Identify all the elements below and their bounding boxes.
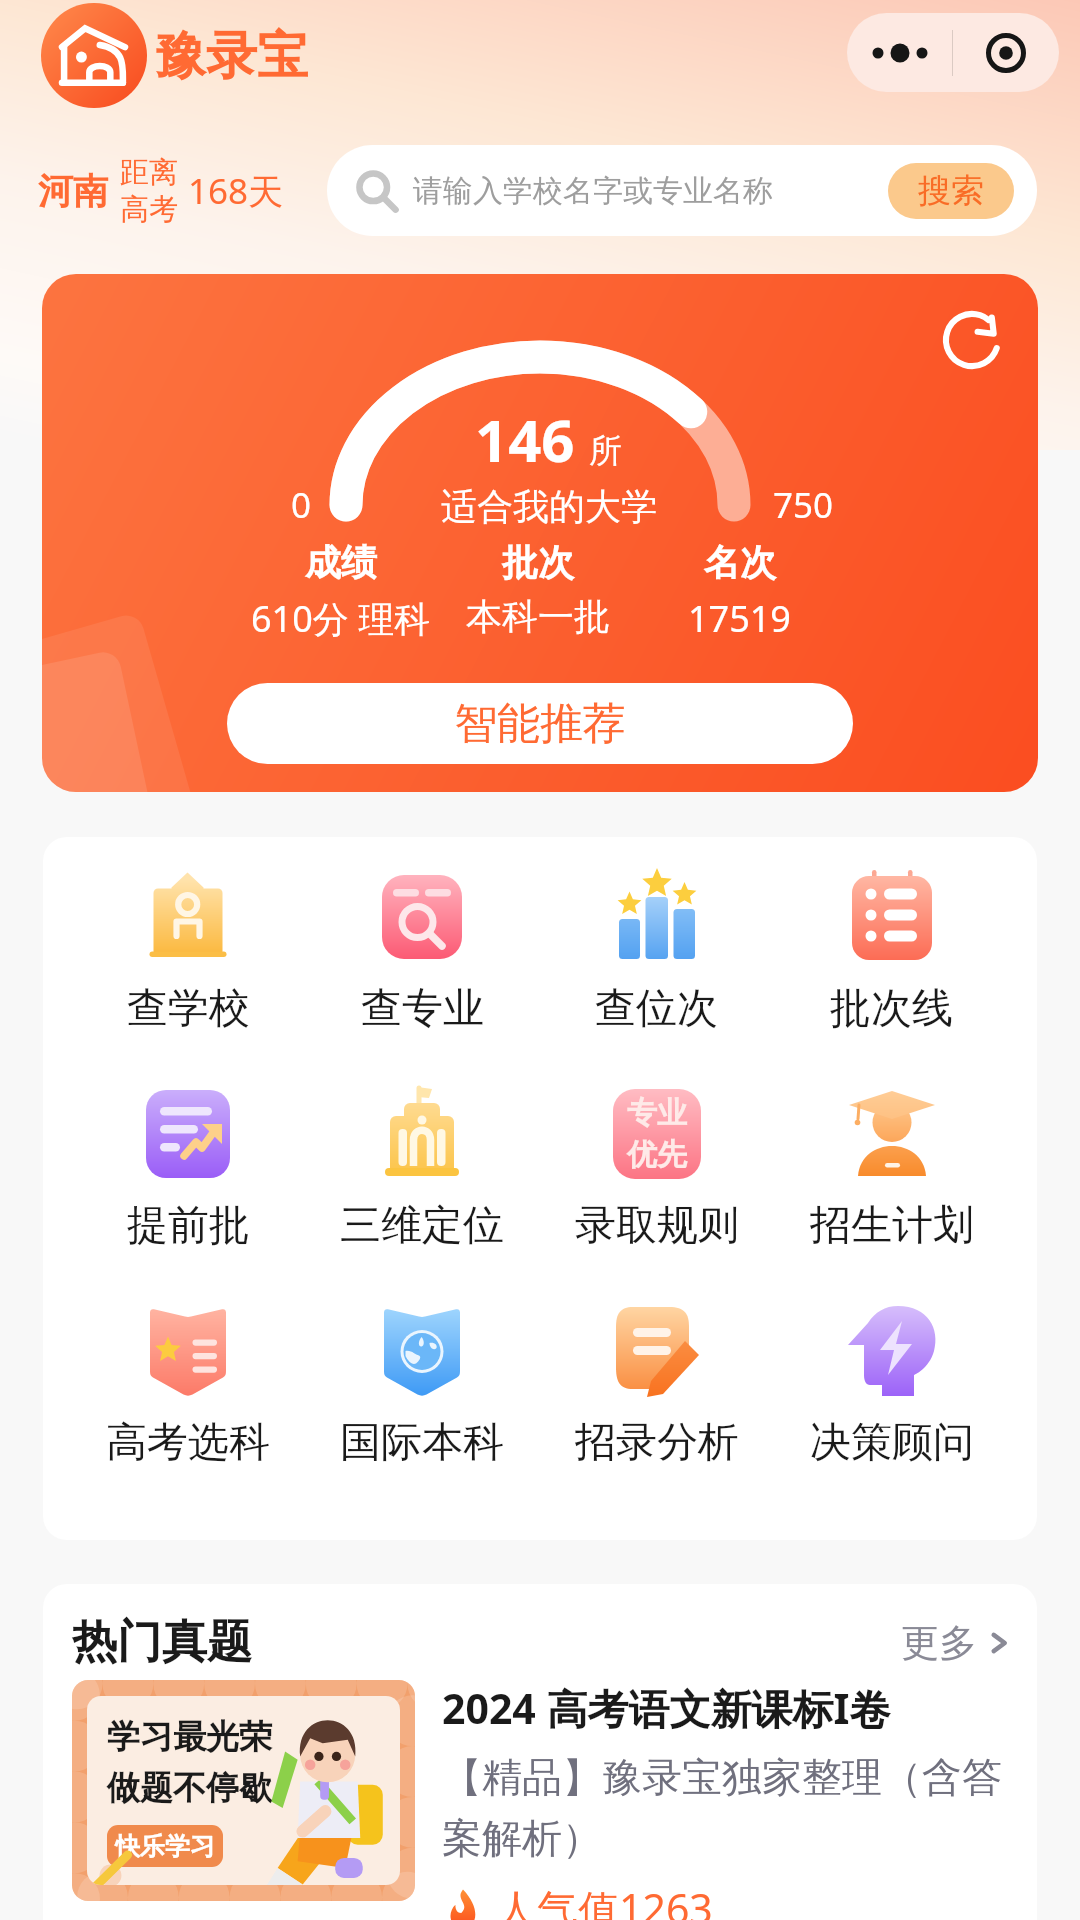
button[interactable]: Close <box>953 13 1059 92</box>
staticText: 名次 <box>704 540 776 585</box>
staticText: 专业 <box>627 1094 687 1132</box>
button[interactable]: More <box>847 13 952 92</box>
staticText: 本科一批 <box>466 594 610 639</box>
staticText: 610分 理科 <box>251 594 431 643</box>
staticText: 招录分析 <box>575 1417 739 1469</box>
button[interactable]: 查专业 <box>305 867 539 1035</box>
staticText: 提前批 <box>127 1200 250 1252</box>
button[interactable]: Refresh <box>941 309 1003 371</box>
staticText: 热门真题 <box>72 1614 252 1671</box>
staticText: 豫录宝 <box>155 24 308 88</box>
staticText: 高考 <box>120 191 178 228</box>
button[interactable]: 智能推荐 <box>227 683 853 764</box>
staticText: 批次线 <box>830 983 953 1035</box>
staticText: 适合我的大学 <box>441 484 657 529</box>
button[interactable]: 批次线 <box>774 867 1009 1035</box>
staticText: 决策顾问 <box>810 1417 974 1469</box>
staticText: 批次 <box>502 540 574 585</box>
staticText: 0 <box>291 481 312 529</box>
button[interactable]: 专业 <box>539 1084 774 1252</box>
staticText: 更多 <box>901 1619 977 1667</box>
staticText: 查专业 <box>361 983 484 1035</box>
button[interactable]: 三维定位 <box>305 1084 539 1252</box>
staticText: 请输入学校名字或专业名称 <box>413 172 773 210</box>
staticText: 高考选科 <box>106 1417 270 1469</box>
button[interactable]: 查位次 <box>539 867 774 1035</box>
staticText: 146 <box>475 400 575 479</box>
staticText: 优先 <box>627 1136 687 1174</box>
staticText: 三维定位 <box>340 1200 504 1252</box>
staticText: 做题不停歇 <box>107 1767 272 1809</box>
staticText: 距离 <box>120 154 178 191</box>
button[interactable]: 决策顾问 <box>774 1301 1009 1469</box>
button[interactable]: 请输入学校名字或专业名称 <box>327 145 1037 236</box>
button[interactable]: 学习最光荣 <box>72 1680 1017 1920</box>
staticText: 招生计划 <box>810 1200 974 1252</box>
staticText: 快乐学习 <box>115 1831 215 1862</box>
button[interactable]: 国际本科 <box>305 1301 539 1469</box>
staticText: 查位次 <box>595 983 718 1035</box>
staticText: 国际本科 <box>340 1417 504 1469</box>
staticText: 【精品】豫录宝独家整理（含答案解析） <box>442 1752 1017 1864</box>
button[interactable]: 高考选科 <box>71 1301 305 1469</box>
staticText: 168天 <box>188 167 284 215</box>
staticText: 17519 <box>688 594 791 643</box>
staticText: 河南 <box>38 169 108 213</box>
button[interactable]: 招录分析 <box>539 1301 774 1469</box>
staticText: 成绩 <box>305 540 377 585</box>
button[interactable]: 招生计划 <box>774 1084 1009 1252</box>
staticText: 人气值1263 <box>496 1880 713 1920</box>
staticText: 750 <box>773 481 834 529</box>
staticText: 录取规则 <box>575 1200 739 1252</box>
button[interactable]: 查学校 <box>71 867 305 1035</box>
staticText: 智能推荐 <box>454 697 626 751</box>
button[interactable]: 更多 <box>901 1619 1011 1667</box>
staticText: 搜索 <box>918 170 984 212</box>
button[interactable]: 搜索 <box>888 163 1014 219</box>
staticText: 查学校 <box>127 983 250 1035</box>
staticText: 所 <box>589 430 622 472</box>
staticText: 2024 高考语文新课标I卷 <box>442 1680 891 1736</box>
staticText: 学习最光荣 <box>107 1716 272 1758</box>
button[interactable]: 提前批 <box>71 1084 305 1252</box>
